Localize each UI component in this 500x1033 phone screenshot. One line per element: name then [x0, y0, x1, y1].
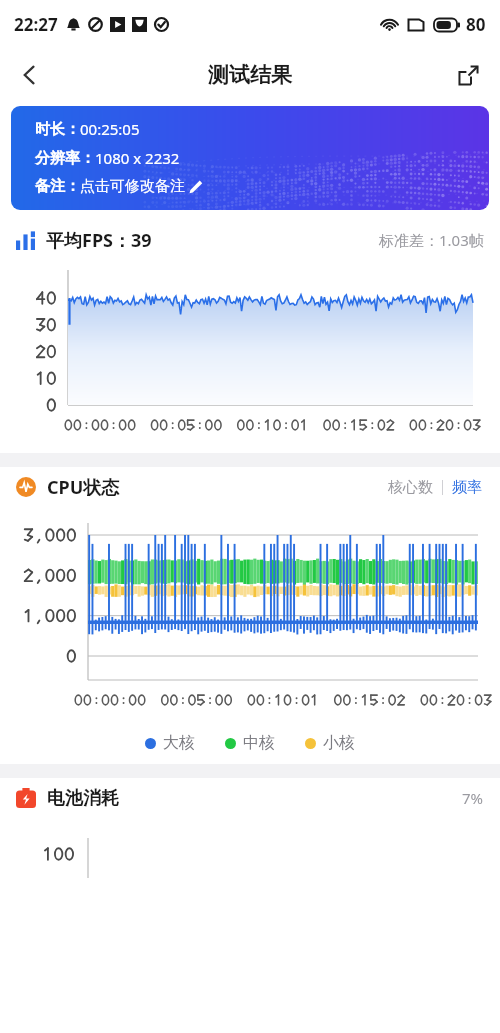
- staticText: 大核: [163, 733, 195, 753]
- staticText: 时长：: [35, 120, 80, 139]
- staticText: 点击可修改备注: [80, 177, 185, 196]
- staticText: 电池消耗: [47, 787, 119, 810]
- staticText: 中核: [243, 733, 275, 753]
- button[interactable]: 大核: [143, 733, 197, 753]
- staticText: 频率: [452, 478, 482, 497]
- staticText: 平均FPS：39: [46, 228, 152, 253]
- staticText: 备注：: [35, 177, 80, 196]
- button[interactable]: 小核: [303, 733, 357, 753]
- staticText: 1080 x 2232: [95, 148, 180, 168]
- staticText: 核心数: [388, 478, 433, 497]
- button[interactable]: Share: [446, 53, 490, 97]
- staticText: 80: [466, 13, 486, 36]
- staticText: 22:27: [14, 13, 58, 36]
- staticText: 分辨率：: [35, 149, 95, 168]
- staticText: CPU状态: [47, 475, 120, 500]
- staticText: 7%: [462, 788, 484, 808]
- button[interactable]: 中核: [223, 733, 277, 753]
- button[interactable]: 频率: [450, 478, 484, 497]
- button[interactable]: 时长：: [11, 106, 489, 210]
- staticText: 小核: [323, 733, 355, 753]
- staticText: 标准差：1.03帧: [379, 230, 484, 250]
- staticText: 00:25:05: [80, 119, 140, 139]
- button[interactable]: 核心数: [386, 478, 435, 497]
- button[interactable]: Back: [8, 53, 52, 97]
- staticText: 测试结果: [208, 62, 292, 88]
